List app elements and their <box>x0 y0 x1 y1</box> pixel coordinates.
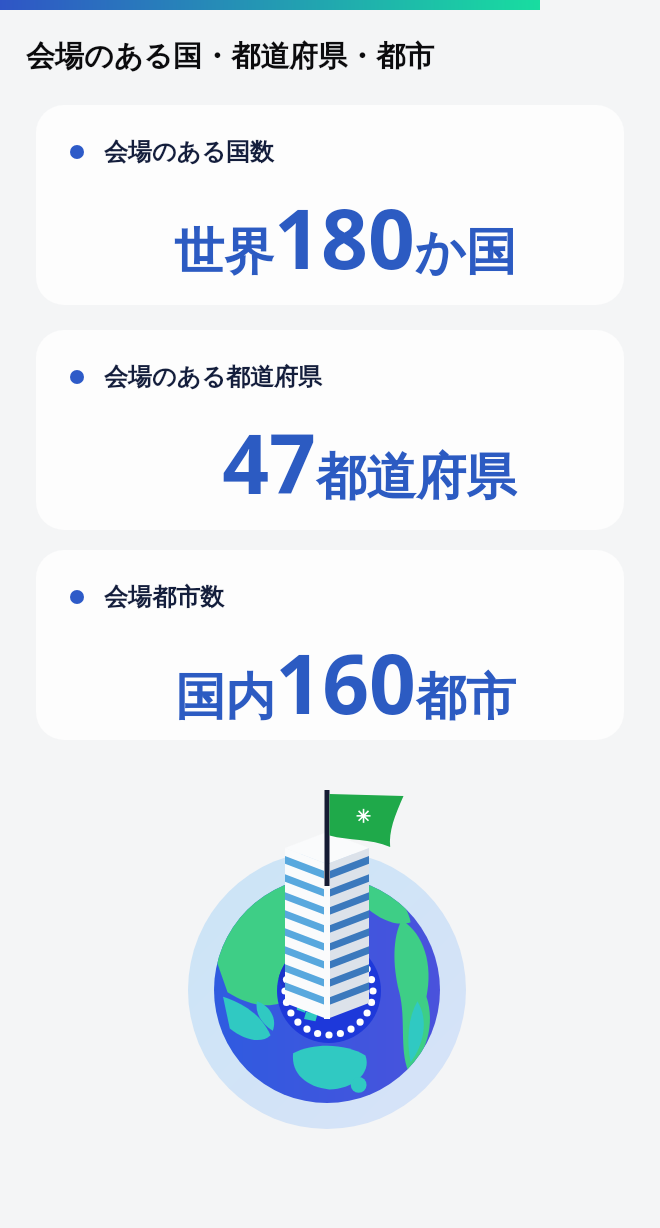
staticText: 会場のある国・都道府県・都市 <box>26 38 435 75</box>
staticText: 国内160都市 <box>36 626 516 738</box>
button[interactable]: 会場のある都道府県 <box>36 330 624 530</box>
staticText: 会場都市数 <box>104 582 224 612</box>
button[interactable]: 会場のある国数 <box>36 105 624 305</box>
button[interactable]: 会場都市数 <box>36 550 624 740</box>
staticText: 会場のある国数 <box>104 137 274 167</box>
other: 世界地図と会場のイラスト <box>180 772 480 1137</box>
staticText: 世界180か国 <box>36 181 516 293</box>
staticText: 会場のある都道府県 <box>104 362 322 392</box>
staticText: 47都道府県 <box>36 406 516 518</box>
